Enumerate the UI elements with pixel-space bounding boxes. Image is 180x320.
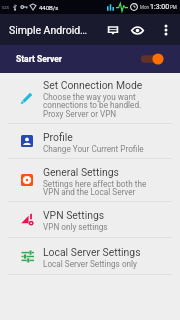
staticText: Change Your Current Profile (43, 144, 144, 154)
button[interactable]: Start Server (0, 45, 180, 73)
button[interactable]: Profile (0, 124, 180, 158)
button[interactable]: Logs (102, 19, 124, 41)
staticText: Profile (43, 131, 73, 143)
button[interactable]: Toggle visibility (126, 19, 148, 41)
staticText: Local Server Settings only (43, 259, 137, 269)
button[interactable]: Set Connection Mode (0, 73, 180, 123)
staticText: Set Connection Mode (43, 79, 143, 91)
button[interactable]: Local Server Settings (0, 238, 180, 274)
staticText: Local Server Settings (43, 246, 141, 258)
staticText: PM (170, 5, 177, 10)
staticText: Choose the way you want connections to b… (43, 92, 142, 119)
button[interactable]: VPN Settings (0, 202, 180, 237)
staticText: General Settings (43, 166, 119, 178)
staticText: 1:3:00 (150, 3, 170, 11)
staticText: VPN only settings (43, 222, 108, 232)
staticText: VPN Settings (43, 209, 105, 221)
staticText: Mon (140, 5, 149, 10)
staticText: Settings here affect both the VPN and th… (43, 179, 147, 197)
staticText: 52S (2, 5, 9, 10)
staticText: Simple Android… (9, 24, 88, 36)
button[interactable]: General Settings (0, 159, 180, 201)
staticText: 440B/s (39, 4, 59, 11)
button[interactable]: More options (154, 18, 178, 42)
staticText: Start Server (16, 54, 62, 64)
